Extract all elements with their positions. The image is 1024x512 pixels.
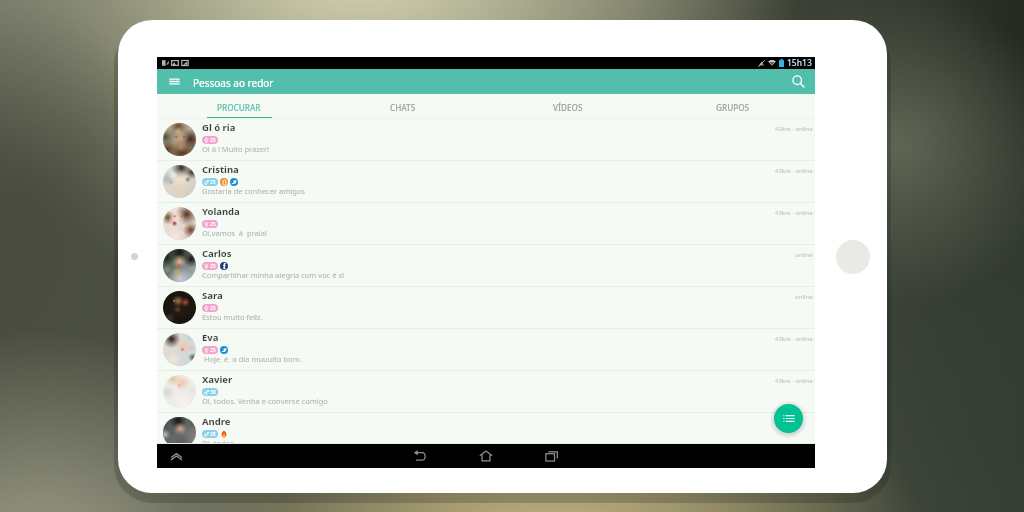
staticText: Hoje é o dia muuuito bom. — [202, 354, 302, 364]
staticText: Oi,vamos à praia! — [202, 228, 267, 238]
staticText: Andre — [202, 415, 231, 428]
button[interactable]: Cristina — [157, 161, 815, 203]
staticText: Carlos — [202, 247, 232, 260]
button[interactable]: Xavier — [157, 371, 815, 413]
staticText: Compartilhar minha alegria com voc ê s! — [202, 270, 345, 280]
staticText: CHATS — [390, 102, 416, 113]
staticText: 25 — [210, 263, 216, 270]
button[interactable]: Expand — [167, 447, 185, 465]
button[interactable]: VÍDEOS — [485, 94, 650, 119]
staticText: Oi, todos. Venha e converse comigo — [202, 396, 328, 406]
button[interactable]: Menu — [162, 69, 187, 94]
staticText: PROCURAR — [217, 102, 261, 113]
staticText: Gl ó ria — [202, 121, 236, 134]
button[interactable]: PROCURAR — [157, 94, 321, 119]
button[interactable]: Sara — [157, 287, 815, 329]
staticText: Ol á ! Muito prazer! — [202, 144, 270, 154]
staticText: f — [223, 262, 226, 270]
staticText: Pessoas ao redor — [193, 76, 274, 90]
staticText: Xavier — [202, 373, 233, 386]
staticText: Gostaria de conhecer amigos — [202, 186, 305, 196]
button[interactable]: Yolanda — [157, 203, 815, 245]
button[interactable]: Andre — [157, 413, 815, 444]
staticText: 25 — [210, 347, 216, 354]
button[interactable]: Back — [410, 446, 430, 466]
button[interactable]: Carlos — [157, 245, 815, 287]
staticText: online — [795, 251, 813, 259]
staticText: GRUPOS — [716, 102, 750, 113]
button[interactable]: Recents — [542, 446, 562, 466]
button[interactable]: CHATS — [321, 94, 485, 119]
staticText: Estou muito feliz. — [202, 312, 263, 322]
staticText: 43km · online — [775, 377, 813, 385]
staticText: 30 — [210, 389, 216, 396]
staticText: 25 — [210, 179, 216, 186]
staticText: Cristina — [202, 163, 239, 176]
button[interactable]: Gl ó ria — [157, 119, 815, 161]
staticText: 43km · online — [775, 335, 813, 343]
button[interactable]: Eva — [157, 329, 815, 371]
button[interactable]: GRUPOS — [650, 94, 815, 119]
staticText: 42km · online — [775, 125, 813, 133]
staticText: 25 — [210, 305, 216, 312]
button[interactable]: Search — [786, 69, 811, 94]
staticText: Eva — [202, 331, 219, 344]
button[interactable]: Home — [476, 446, 496, 466]
staticText: 28 — [210, 431, 216, 438]
staticText: 43km · online — [775, 167, 813, 175]
staticText: Oi, todos. — [202, 438, 236, 448]
staticText: 25 — [210, 137, 216, 144]
staticText: Sara — [202, 289, 223, 302]
button[interactable]: Filter list — [774, 404, 803, 433]
staticText: 25 — [210, 221, 216, 228]
staticText: 15h13 — [787, 57, 812, 69]
staticText: Yolanda — [202, 205, 240, 218]
staticText: VÍDEOS — [553, 102, 583, 113]
staticText: online — [795, 293, 813, 301]
staticText: 43km · online — [775, 209, 813, 217]
